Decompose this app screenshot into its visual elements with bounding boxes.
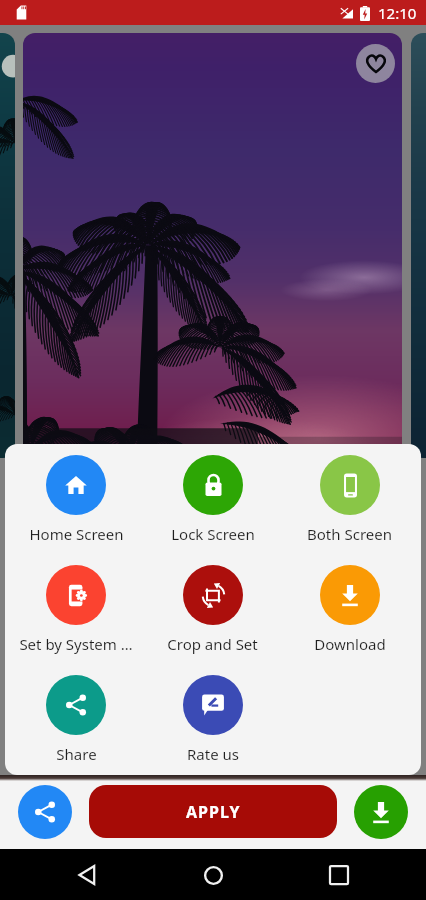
staticText: Share: [56, 744, 97, 764]
button[interactable]: Favorite: [356, 44, 395, 83]
button[interactable]: Recents: [319, 855, 359, 895]
button[interactable]: Crop and Set: [144, 565, 281, 654]
staticText: 12:10: [378, 3, 417, 23]
button[interactable]: Download: [281, 565, 418, 654]
staticText: APPLY: [186, 801, 241, 823]
staticText: Both Screen: [307, 524, 392, 544]
button[interactable]: Both Screen: [281, 455, 418, 544]
staticText: Download: [314, 634, 386, 654]
button[interactable]: APPLY: [89, 785, 337, 838]
button[interactable]: Download: [354, 785, 408, 839]
button[interactable]: Rate us: [144, 675, 281, 764]
staticText: Rate us: [187, 744, 239, 764]
staticText: Crop and Set: [167, 634, 258, 654]
button[interactable]: Share: [8, 675, 144, 764]
button[interactable]: Set by System …: [8, 565, 144, 654]
button[interactable]: Home: [193, 855, 233, 895]
button[interactable]: Back: [67, 855, 107, 895]
button[interactable]: Lock Screen: [144, 455, 281, 544]
staticText: Lock Screen: [171, 524, 255, 544]
staticText: Home Screen: [29, 524, 124, 544]
button[interactable]: Home Screen: [8, 455, 144, 544]
button[interactable]: Share: [18, 785, 72, 839]
staticText: Set by System …: [19, 634, 133, 654]
